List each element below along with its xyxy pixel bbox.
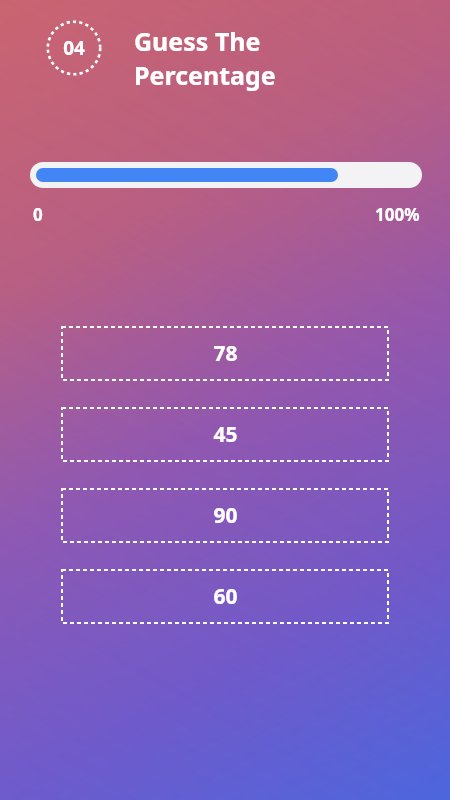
staticText: 0 <box>33 203 43 226</box>
staticText: Guess The <box>134 24 261 58</box>
staticText: 04 <box>63 35 85 61</box>
staticText: Percentage <box>134 58 276 92</box>
staticText: 45 <box>213 420 238 449</box>
button[interactable]: 90 <box>61 488 389 543</box>
button[interactable]: 60 <box>61 569 389 624</box>
staticText: 90 <box>213 501 238 530</box>
staticText: 78 <box>213 339 238 368</box>
staticText: 100% <box>375 203 420 226</box>
staticText: 60 <box>213 582 238 611</box>
button[interactable]: 45 <box>61 407 389 462</box>
button[interactable]: 78 <box>61 326 389 381</box>
